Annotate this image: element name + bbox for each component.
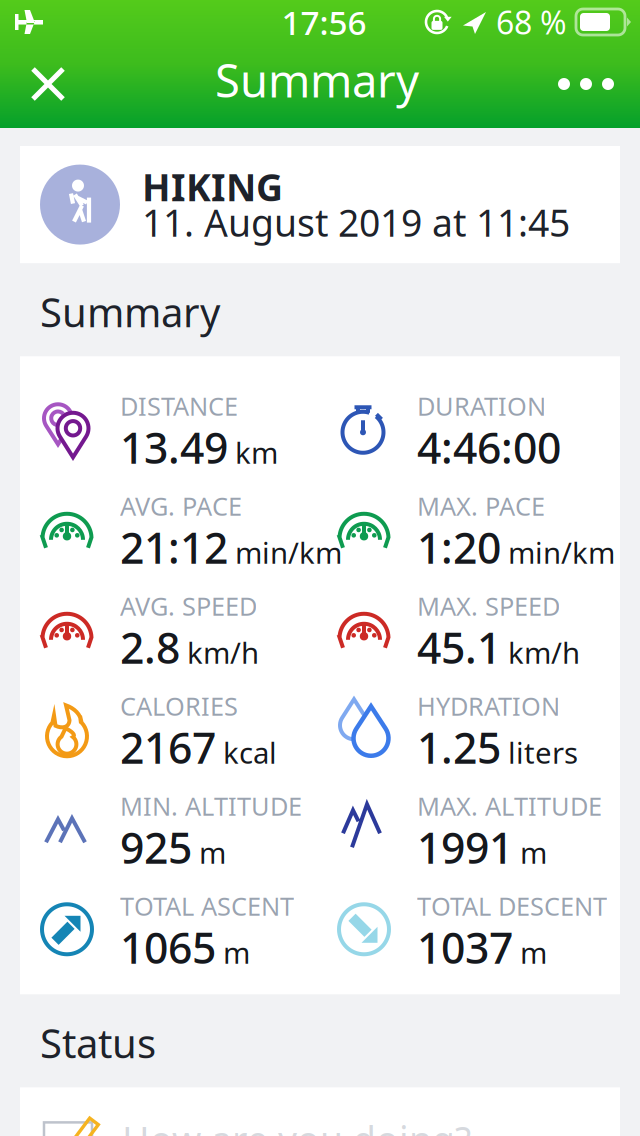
- staticText: HYDRATION: [417, 689, 560, 723]
- staticText: 2.8: [120, 619, 180, 675]
- staticText: AVG. PACE: [120, 489, 242, 523]
- staticText: HIKING: [142, 162, 283, 212]
- staticText: CALORIES: [120, 689, 238, 723]
- staticText: 2167: [120, 719, 216, 775]
- staticText: 13.49: [120, 419, 228, 475]
- staticText: m: [223, 933, 250, 972]
- staticText: m: [520, 833, 547, 872]
- staticText: Summary: [40, 285, 220, 338]
- staticText: DISTANCE: [120, 389, 238, 423]
- staticText: Summary: [215, 50, 419, 110]
- button[interactable]: Close: [12, 45, 84, 123]
- staticText: 21:12: [120, 519, 228, 575]
- staticText: DURATION: [417, 389, 546, 423]
- staticText: TOTAL ASCENT: [120, 889, 294, 923]
- staticText: MIN. ALTITUDE: [120, 789, 302, 823]
- staticText: min/km: [508, 533, 615, 572]
- staticText: km: [235, 433, 278, 472]
- staticText: Status: [40, 1016, 156, 1069]
- button[interactable]: More options: [550, 45, 622, 123]
- staticText: m: [520, 933, 547, 972]
- staticText: AVG. SPEED: [120, 589, 257, 623]
- staticText: 1065: [120, 919, 216, 975]
- staticText: MAX. PACE: [417, 489, 545, 523]
- staticText: min/km: [235, 533, 342, 572]
- staticText: 1037: [417, 919, 513, 975]
- staticText: 4:46:00: [417, 419, 561, 475]
- staticText: TOTAL DESCENT: [417, 889, 607, 923]
- staticText: 17:56: [281, 0, 366, 44]
- staticText: liters: [508, 733, 578, 772]
- staticText: MAX. SPEED: [417, 589, 560, 623]
- staticText: How are you doing?: [122, 1115, 471, 1136]
- button[interactable]: How are you doing?: [0, 1087, 640, 1136]
- staticText: km/h: [187, 633, 259, 672]
- staticText: 45.1: [417, 619, 501, 675]
- button[interactable]: HIKING: [0, 146, 640, 263]
- staticText: 68 %: [496, 1, 567, 43]
- staticText: 1.25: [417, 719, 501, 775]
- staticText: 925: [120, 819, 192, 875]
- staticText: 1991: [417, 819, 513, 875]
- staticText: kcal: [223, 733, 277, 772]
- staticText: m: [199, 833, 226, 872]
- staticText: 11. August 2019 at 11:45: [142, 198, 570, 247]
- staticText: MAX. ALTITUDE: [417, 789, 602, 823]
- staticText: 1:20: [417, 519, 501, 575]
- staticText: km/h: [508, 633, 580, 672]
